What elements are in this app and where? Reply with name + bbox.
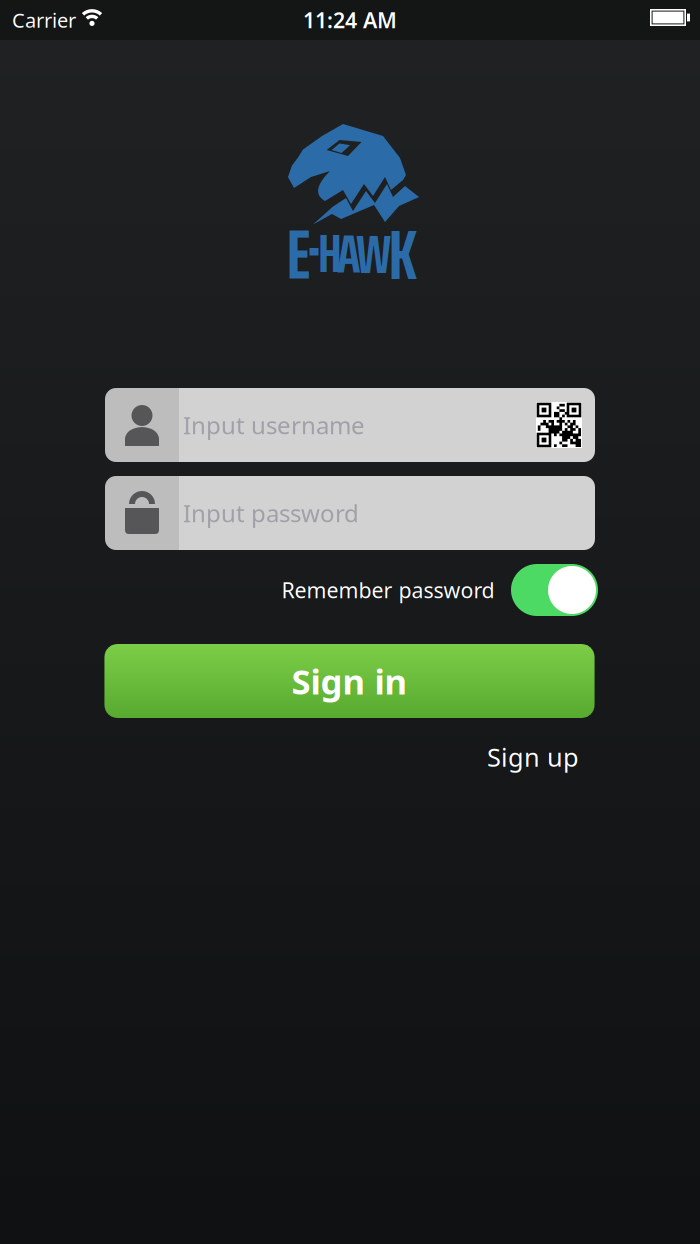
staticText: Sign in [291, 658, 407, 704]
staticText: A [337, 210, 361, 296]
staticText: Input username [183, 409, 365, 441]
staticText: Carrier [12, 7, 76, 33]
staticText: K [388, 201, 417, 309]
staticText: 11:24 AM [303, 6, 397, 34]
staticText: W [356, 211, 391, 297]
staticText: Sign up [487, 740, 579, 774]
staticText: E [286, 200, 310, 309]
button[interactable]: Scan QR code [536, 402, 582, 448]
staticText: Input password [183, 497, 359, 529]
button[interactable]: Remember password [511, 564, 598, 616]
staticText: Remember password [281, 576, 494, 604]
button[interactable]: Sign in [104, 644, 594, 718]
staticText: H [318, 211, 342, 295]
button[interactable]: Sign up [487, 740, 579, 774]
